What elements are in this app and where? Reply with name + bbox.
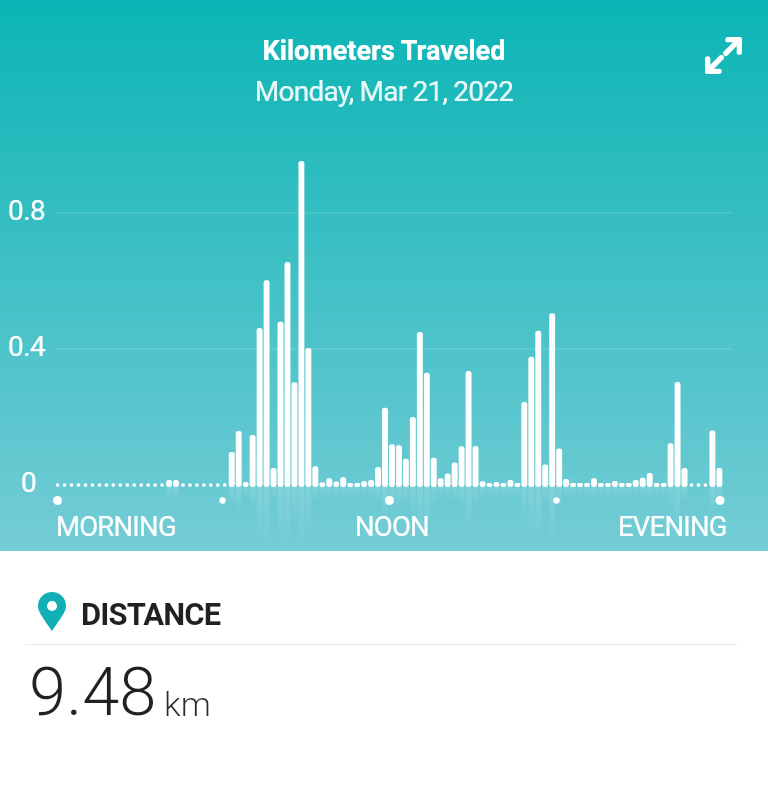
staticText: Monday, Mar 21, 2022 xyxy=(0,75,768,108)
staticText: km xyxy=(164,684,211,724)
staticText: 0.4 xyxy=(8,330,46,363)
staticText: 0 xyxy=(21,466,37,499)
staticText: 9.48 xyxy=(29,653,157,732)
staticText: 0.8 xyxy=(8,194,46,227)
staticText: Kilometers Traveled xyxy=(0,35,768,67)
button[interactable]: Expand chart xyxy=(693,25,754,86)
staticText: NOON xyxy=(355,510,429,542)
staticText: EVENING xyxy=(618,510,727,542)
staticText: MORNING xyxy=(56,510,176,542)
staticText: DISTANCE xyxy=(81,596,221,632)
button[interactable]: DISTANCE xyxy=(0,578,768,650)
